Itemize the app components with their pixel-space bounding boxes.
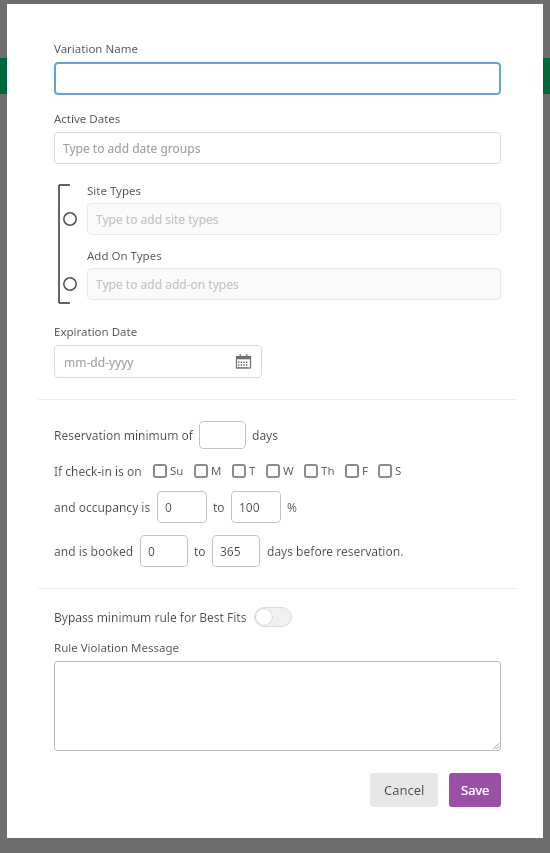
staticText: Type to add site types [96, 211, 219, 227]
button[interactable]: Save [449, 773, 501, 807]
button[interactable]: Select add-on types [59, 273, 81, 295]
button[interactable]: Open calendar [236, 354, 251, 369]
staticText: 0 [148, 543, 155, 559]
button[interactable] [54, 661, 501, 751]
button[interactable]: 100 [231, 491, 281, 523]
staticText: to [213, 499, 225, 515]
button[interactable] [54, 62, 501, 95]
button[interactable]: S [378, 463, 402, 479]
button[interactable]: Th [304, 463, 335, 479]
button[interactable] [199, 421, 246, 449]
staticText: to [194, 543, 206, 559]
button[interactable]: 0 [140, 535, 188, 567]
staticText: F [362, 463, 368, 479]
staticText: and occupancy is [54, 499, 151, 515]
staticText: % [287, 499, 297, 515]
button[interactable]: W [266, 463, 294, 479]
button[interactable]: Select site types [59, 208, 81, 230]
staticText: Su [170, 463, 184, 479]
staticText: Reservation minimum of [54, 427, 193, 443]
button[interactable]: 365 [212, 535, 260, 567]
staticText: T [249, 463, 256, 479]
button[interactable]: mm-dd-yyyy [54, 345, 262, 378]
staticText: 0 [165, 499, 172, 515]
staticText: Variation Name [54, 41, 138, 57]
staticText: Save [461, 781, 490, 799]
button[interactable]: Bypass minimum rule for Best Fits toggle [254, 607, 292, 627]
button[interactable]: Su [153, 463, 184, 479]
staticText: Th [321, 463, 335, 479]
staticText: Active Dates [54, 111, 121, 127]
button[interactable]: F [345, 463, 368, 479]
staticText: 365 [220, 543, 241, 559]
staticText: W [283, 463, 294, 479]
staticText: Type to add add-on types [96, 276, 239, 292]
button[interactable]: Type to add site types [87, 203, 501, 235]
button[interactable]: 0 [157, 491, 207, 523]
staticText: Add On Types [87, 248, 162, 264]
staticText: 100 [239, 499, 260, 515]
staticText: Expiration Date [54, 324, 138, 340]
staticText: mm-dd-yyyy [64, 354, 134, 370]
staticText: M [211, 463, 222, 479]
button[interactable]: T [232, 463, 256, 479]
button[interactable]: M [194, 463, 222, 479]
staticText: days before reservation. [267, 543, 404, 559]
staticText: Bypass minimum rule for Best Fits [54, 609, 247, 625]
staticText: Site Types [87, 183, 142, 199]
button[interactable]: Cancel [370, 773, 438, 807]
staticText: S [395, 463, 402, 479]
staticText: Cancel [384, 781, 425, 799]
staticText: If check-in is on [54, 463, 142, 479]
button[interactable]: Type to add add-on types [87, 268, 501, 300]
staticText: and is booked [54, 543, 134, 559]
staticText: days [252, 427, 278, 443]
staticText: Rule Violation Message [54, 640, 180, 656]
button[interactable]: Type to add date groups [54, 132, 501, 164]
staticText: Type to add date groups [63, 140, 201, 156]
